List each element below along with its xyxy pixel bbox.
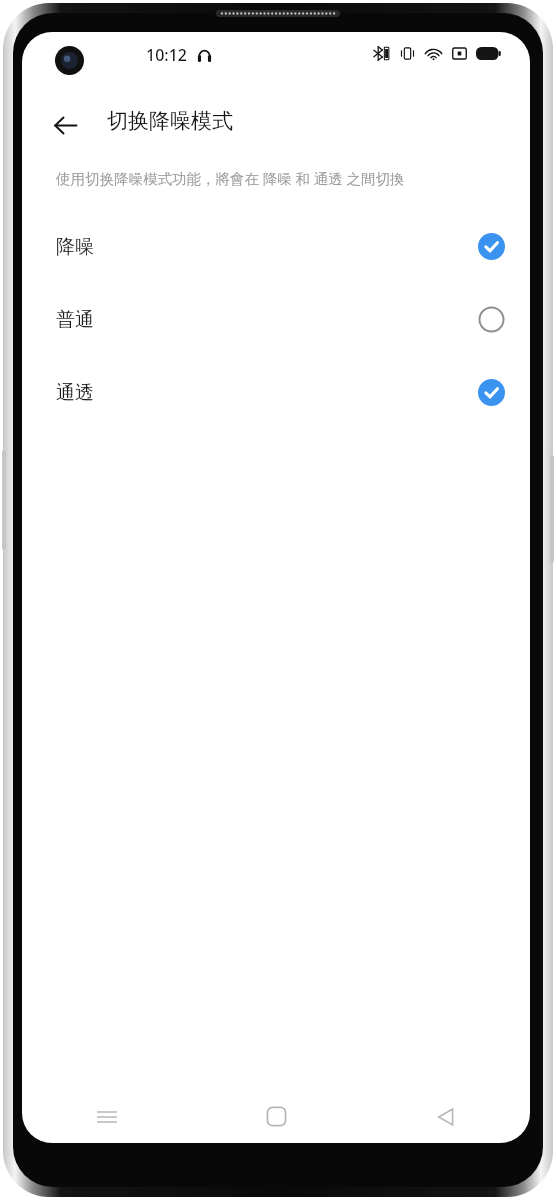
button[interactable]: Back — [361, 1090, 530, 1143]
button[interactable]: Recent apps — [22, 1090, 192, 1143]
button[interactable]: Home — [192, 1090, 361, 1143]
button[interactable]: 降噪 — [22, 210, 530, 283]
button[interactable]: Back — [38, 98, 92, 152]
staticText: 切换降噪模式 — [107, 108, 233, 134]
staticText: 普通 — [56, 308, 94, 332]
button[interactable]: 普通 — [22, 283, 530, 356]
staticText: 使用切换降噪模式功能，將會在 降噪 和 通透 之間切換 — [56, 168, 405, 188]
staticText: 降噪 — [56, 235, 94, 259]
staticText: 通透 — [56, 381, 94, 405]
staticText: 10:12 — [146, 44, 187, 66]
button[interactable]: 通透 — [22, 356, 530, 429]
